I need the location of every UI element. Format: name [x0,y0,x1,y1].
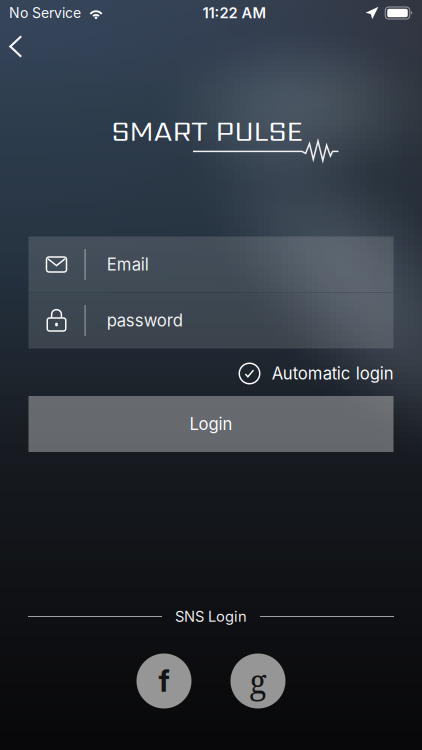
staticText: SMART PULSE [111,111,302,151]
button[interactable]: Sign in with Google [230,653,285,708]
staticText: Login [189,414,232,434]
staticText: Email [107,254,149,275]
staticText: Automatic login [272,363,394,384]
button[interactable]: Sign in with Facebook [136,653,191,708]
staticText: 11:22 AM [202,4,266,22]
button[interactable]: Login [28,396,393,452]
staticText: g [249,659,266,703]
button[interactable]: Back [0,25,38,69]
staticText: password [107,310,183,331]
staticText: f [158,663,169,699]
staticText: No Service [9,4,81,21]
staticText: SNS Login [175,608,247,625]
button[interactable]: Automatic login [239,359,394,387]
